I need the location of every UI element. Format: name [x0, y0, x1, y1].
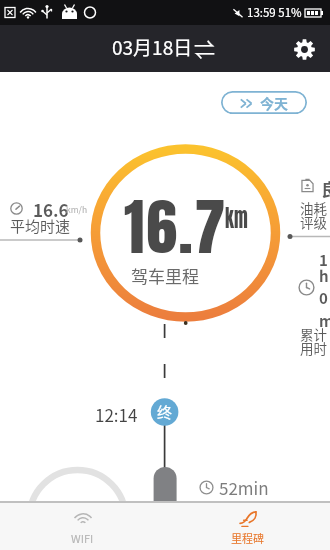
staticText: 良 [321, 176, 330, 201]
staticText: 油耗 [300, 198, 327, 218]
staticText: 驾车里程 [131, 263, 199, 288]
button[interactable]: Settings [287, 32, 321, 66]
staticText: h [319, 265, 329, 287]
staticText: 1 [319, 249, 328, 271]
staticText: 累计 [300, 324, 327, 344]
staticText: 16.7 [124, 180, 227, 273]
staticText: 12:14 [95, 402, 138, 427]
button[interactable]: WIFI [0, 503, 165, 550]
button[interactable]: 今天 [221, 91, 307, 114]
staticText: km [225, 200, 248, 236]
staticText: WIFI [71, 530, 94, 546]
staticText: km/h [66, 203, 88, 215]
staticText: 0 [319, 287, 328, 309]
staticText: 16.6 [33, 197, 69, 222]
staticText: m [319, 310, 330, 332]
staticText: 平均时速 [10, 215, 71, 237]
staticText: 52min [219, 475, 269, 500]
staticText: 13:59 51% [247, 4, 302, 21]
staticText: 用时 [300, 338, 327, 358]
button[interactable]: 里程碑 [165, 503, 330, 550]
staticText: 终 [157, 401, 173, 423]
staticText: 今天 [260, 93, 288, 113]
staticText: 03月18日 [112, 33, 193, 61]
staticText: 评级 [300, 212, 327, 232]
staticText: 里程碑 [231, 530, 264, 546]
staticText: ⇌ [194, 33, 215, 63]
